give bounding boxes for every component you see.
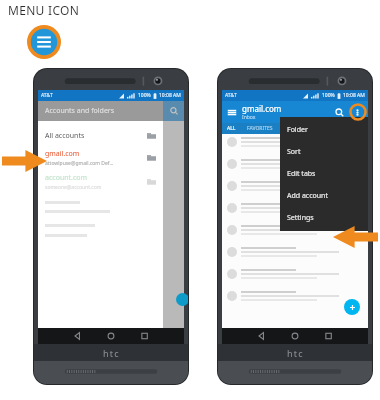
staticText: Edit tabs bbox=[287, 169, 316, 179]
button[interactable]: Open navigation drawer bbox=[227, 107, 237, 117]
staticText: someone@account.com bbox=[45, 184, 102, 191]
staticText: AT&T bbox=[225, 92, 237, 99]
staticText: Sort bbox=[287, 147, 301, 157]
button[interactable]: ALL bbox=[227, 125, 236, 132]
staticText: Accounts and folders bbox=[45, 106, 115, 116]
button[interactable]: Add account bbox=[280, 185, 368, 207]
staticText: Folder bbox=[287, 125, 308, 135]
button[interactable]: Compose bbox=[344, 299, 360, 315]
button[interactable]: Sort bbox=[280, 141, 368, 163]
button[interactable]: Folder bbox=[280, 119, 368, 141]
button[interactable]: Settings bbox=[280, 207, 368, 229]
button[interactable]: account.com bbox=[38, 170, 163, 194]
staticText: 10:08 AM bbox=[159, 92, 181, 99]
staticText: 100% bbox=[138, 92, 151, 99]
staticText: Inbox bbox=[242, 114, 256, 121]
button[interactable]: Edit tabs bbox=[280, 163, 368, 185]
button[interactable]: All accounts bbox=[38, 126, 163, 146]
staticText: 10:08 AM bbox=[343, 92, 365, 99]
staticText: 100% bbox=[322, 92, 335, 99]
staticText: gmail.com bbox=[242, 103, 282, 114]
staticText: MENU ICON bbox=[8, 2, 80, 18]
staticText: Settings bbox=[287, 213, 314, 223]
button[interactable]: More options bbox=[352, 107, 363, 118]
staticText: FAVORITES bbox=[247, 125, 273, 132]
button[interactable]: gmail.com bbox=[38, 146, 163, 170]
staticText: Add account bbox=[287, 191, 328, 201]
staticText: All accounts bbox=[45, 131, 85, 141]
button[interactable]: Search bbox=[334, 107, 345, 118]
button[interactable]: Search bbox=[169, 106, 179, 116]
button[interactable]: FAVORITES bbox=[247, 125, 273, 132]
staticText: htc bbox=[103, 347, 120, 359]
staticText: gmail.com bbox=[45, 149, 80, 159]
staticText: AT&T bbox=[41, 92, 53, 99]
button[interactable]: Compose bbox=[176, 293, 188, 306]
staticText: ALL bbox=[227, 125, 236, 132]
staticText: htc bbox=[287, 347, 304, 359]
staticText: attowlpuse@gmail.com Def... bbox=[45, 160, 114, 167]
button[interactable]: Menu icon bbox=[27, 25, 61, 59]
staticText: account.com bbox=[45, 173, 88, 183]
